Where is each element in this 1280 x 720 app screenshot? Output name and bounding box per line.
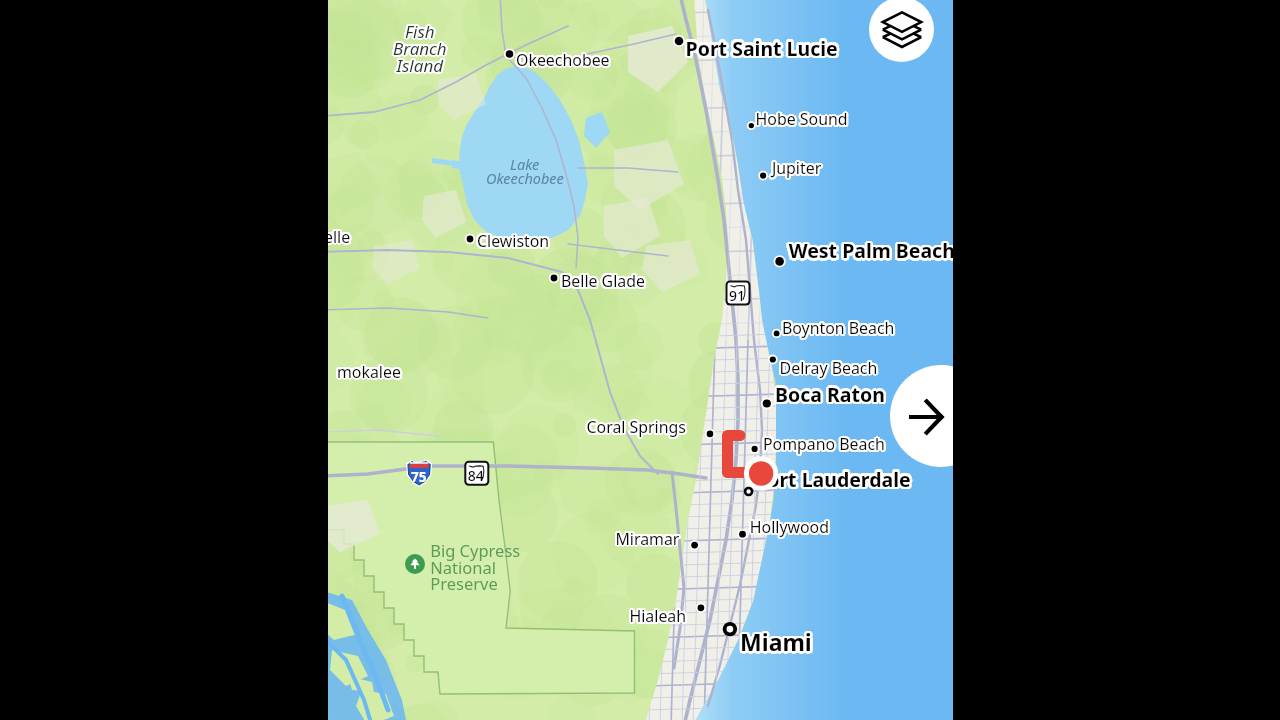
button[interactable]: Next xyxy=(890,365,953,467)
button[interactable]: Map layers xyxy=(869,0,934,62)
